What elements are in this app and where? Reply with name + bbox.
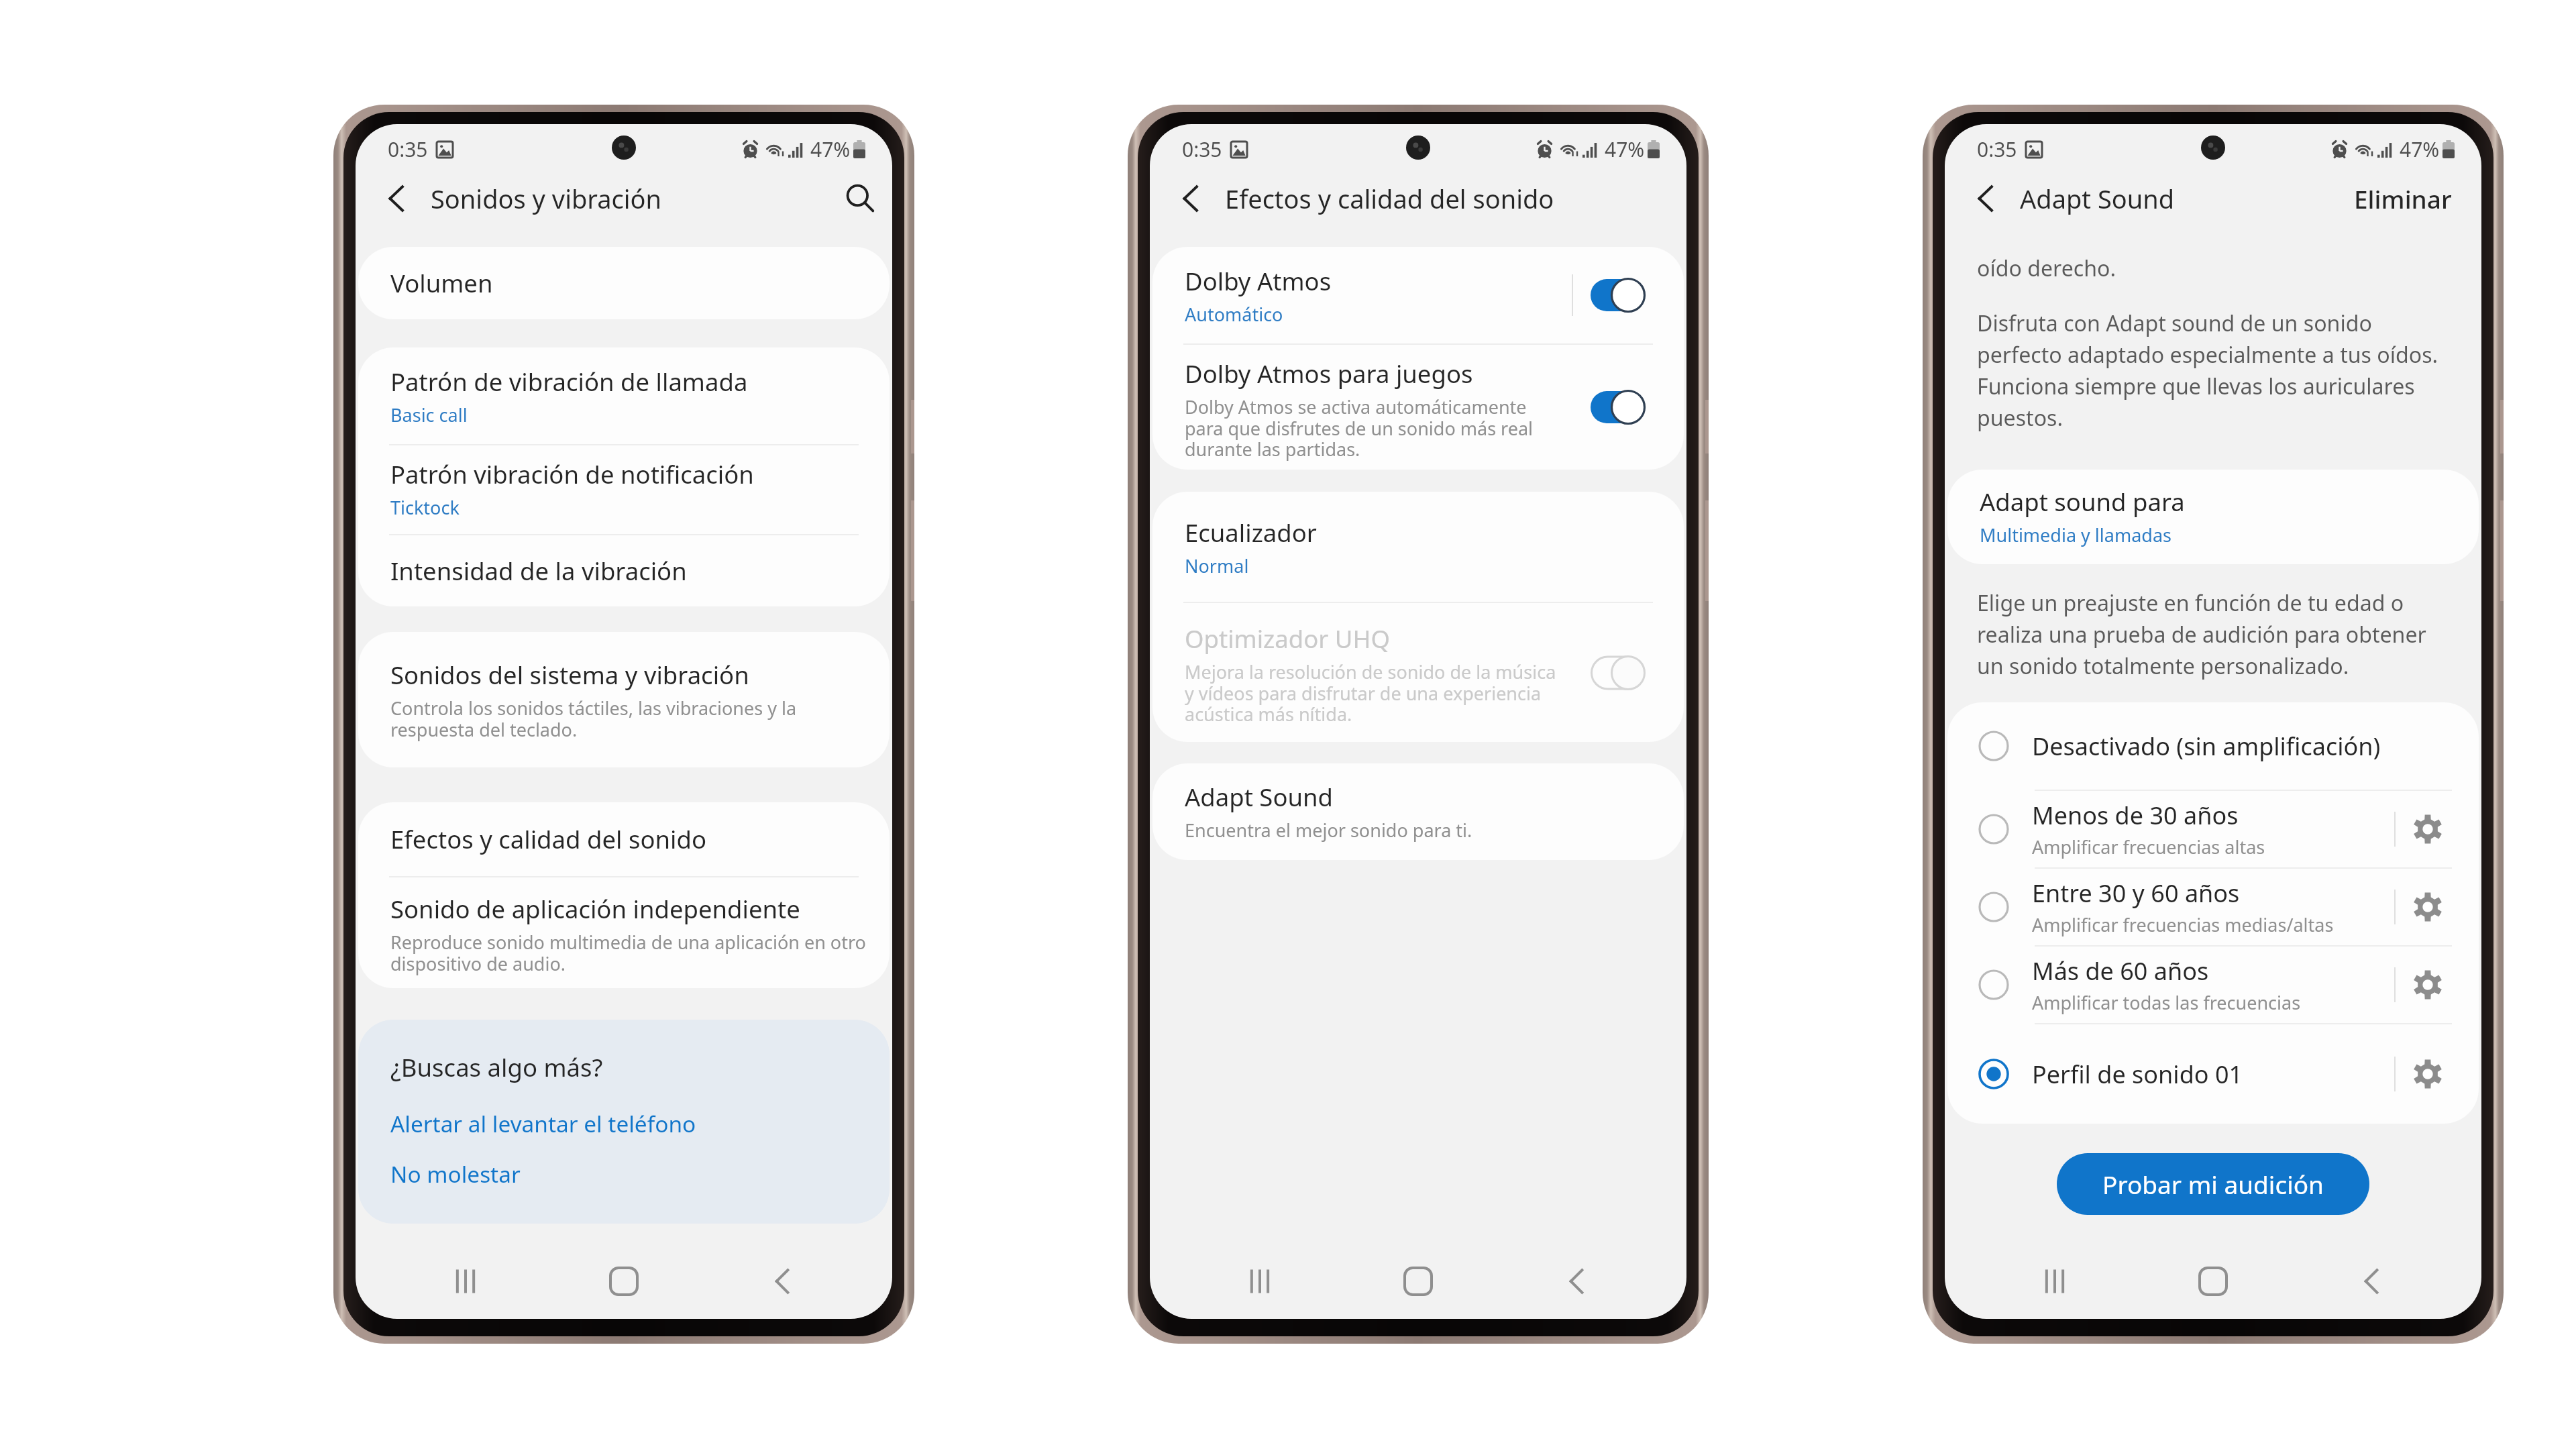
- button[interactable]: Sonidos del sistema y vibración: [358, 632, 890, 767]
- button[interactable]: Back: [1539, 1244, 1614, 1319]
- staticText: Intensidad de la vibración: [390, 554, 687, 588]
- button[interactable]: Optimizador UHQ: [1591, 655, 1646, 690]
- staticText: Dolby Atmos: [1185, 264, 1332, 298]
- button[interactable]: Desactivado (sin amplificación): [1947, 702, 2479, 790]
- staticText: Sonidos y vibración: [431, 181, 662, 216]
- staticText: Sonidos del sistema y vibración: [390, 658, 749, 692]
- staticText: Dolby Atmos se activa automáticamente pa…: [1185, 394, 1564, 462]
- button[interactable]: Adapt sound para: [1947, 470, 2208, 564]
- staticText: Adapt sound para: [1980, 485, 2185, 519]
- button[interactable]: Más de 60 años: [1947, 947, 2479, 1023]
- staticText: Disfruta con Adapt sound de un sonido pe…: [1977, 309, 2449, 432]
- button[interactable]: Adapt Sound: [1152, 763, 1684, 860]
- staticText: Elige un preajuste en función de tu edad…: [1977, 588, 2449, 680]
- staticText: Automático: [1185, 302, 1283, 327]
- button[interactable]: Menos de 30 años: [1947, 791, 2479, 867]
- button[interactable]: Home: [1381, 1244, 1456, 1319]
- button[interactable]: Volumen: [358, 247, 890, 319]
- button[interactable]: Recents: [1222, 1244, 1297, 1319]
- staticText: 0:35: [1182, 136, 1222, 163]
- staticText: Perfil de sonido 01: [2032, 1058, 2243, 1091]
- button[interactable]: Settings: [2396, 875, 2460, 939]
- button[interactable]: Probar mi audición: [2057, 1153, 2369, 1215]
- staticText: oído derecho.: [1977, 254, 2116, 283]
- staticText: Amplificar todas las frecuencias: [2032, 990, 2301, 1015]
- button[interactable]: Entre 30 y 60 años: [1947, 869, 2479, 945]
- staticText: Mejora la resolución de sonido de la mús…: [1185, 659, 1564, 727]
- button[interactable]: Dolby Atmos: [1591, 278, 1646, 313]
- button[interactable]: Ecualizador: [1152, 492, 1684, 602]
- staticText: Adapt Sound: [1185, 780, 1334, 814]
- staticText: Ticktock: [390, 495, 460, 520]
- staticText: Amplificar frecuencias altas: [2032, 835, 2265, 859]
- staticText: Multimedia y llamadas: [1980, 523, 2172, 547]
- button[interactable]: Back: [1154, 165, 1229, 232]
- staticText: Encuentra el mejor sonido para ti.: [1185, 818, 1472, 843]
- button[interactable]: Settings: [2396, 1042, 2460, 1106]
- staticText: Sonido de aplicación independiente: [390, 892, 800, 926]
- button[interactable]: Patrón de vibración de llamada: [358, 347, 890, 444]
- staticText: Más de 60 años: [2032, 955, 2209, 987]
- staticText: ¿Buscas algo más?: [390, 1051, 603, 1084]
- button[interactable]: Eliminar: [2324, 167, 2481, 230]
- staticText: Amplificar frecuencias medias/altas: [2032, 912, 2334, 937]
- button[interactable]: Search: [828, 166, 892, 231]
- staticText: Normal: [1185, 553, 1249, 578]
- button[interactable]: Settings: [2396, 797, 2460, 861]
- staticText: Eliminar: [2354, 182, 2452, 215]
- staticText: Optimizador UHQ: [1185, 622, 1391, 655]
- staticText: Adapt Sound: [2020, 181, 2175, 216]
- button[interactable]: Back: [2334, 1244, 2409, 1319]
- staticText: Desactivado (sin amplificación): [2032, 730, 2381, 763]
- staticText: 0:35: [388, 136, 428, 163]
- staticText: Dolby Atmos para juegos: [1185, 357, 1473, 390]
- button[interactable]: Recents: [2017, 1244, 2092, 1319]
- staticText: 47%: [1605, 136, 1645, 163]
- staticText: Alertar al levantar el teléfono: [390, 1108, 696, 1138]
- button[interactable]: Perfil de sonido 01: [1947, 1024, 2479, 1124]
- staticText: Reproduce sonido multimedia de una aplic…: [390, 930, 867, 976]
- staticText: Patrón de vibración de llamada: [390, 365, 748, 398]
- button[interactable]: Back: [1949, 165, 2024, 232]
- button[interactable]: Intensidad de la vibración: [358, 535, 890, 606]
- button[interactable]: Alertar al levantar el teléfono: [390, 1108, 696, 1138]
- staticText: 47%: [2400, 136, 2440, 163]
- button[interactable]: Dolby Atmos: [1152, 247, 1684, 343]
- button[interactable]: Patrón vibración de notificación: [358, 445, 890, 534]
- staticText: Probar mi audición: [2102, 1167, 2324, 1201]
- staticText: Menos de 30 años: [2032, 799, 2239, 832]
- staticText: Controla los sonidos táctiles, las vibra…: [390, 696, 867, 742]
- button[interactable]: Back: [745, 1244, 820, 1319]
- button[interactable]: Recents: [428, 1244, 503, 1319]
- button[interactable]: Home: [586, 1244, 661, 1319]
- button[interactable]: Home: [2176, 1244, 2251, 1319]
- staticText: 0:35: [1977, 136, 2017, 163]
- staticText: Basic call: [390, 402, 468, 427]
- button[interactable]: Settings: [2396, 953, 2460, 1017]
- staticText: Volumen: [390, 266, 493, 300]
- button[interactable]: Dolby Atmos para juegos: [1152, 345, 1684, 470]
- staticText: Ecualizador: [1185, 516, 1317, 549]
- button[interactable]: Optimizador UHQ: [1152, 603, 1684, 742]
- staticText: Efectos y calidad del sonido: [390, 822, 706, 856]
- staticText: Entre 30 y 60 años: [2032, 877, 2240, 910]
- staticText: Patrón vibración de notificación: [390, 458, 754, 491]
- staticText: No molestar: [390, 1159, 521, 1189]
- staticText: 47%: [810, 136, 851, 163]
- button[interactable]: No molestar: [390, 1159, 521, 1189]
- button[interactable]: Dolby Atmos para juegos: [1591, 390, 1646, 425]
- button[interactable]: Efectos y calidad del sonido: [358, 802, 890, 876]
- button[interactable]: Sonido de aplicación independiente: [358, 877, 890, 988]
- button[interactable]: Back: [360, 165, 435, 232]
- staticText: Efectos y calidad del sonido: [1225, 181, 1554, 216]
